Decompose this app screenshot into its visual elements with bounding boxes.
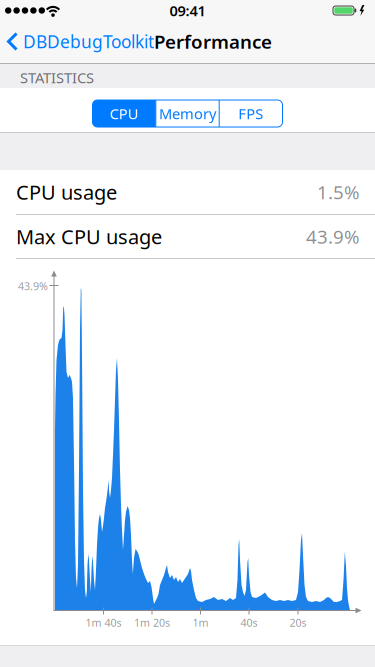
staticText: 20s — [289, 615, 306, 630]
staticText: 1m 40s — [85, 615, 121, 630]
staticText: Performance — [154, 29, 272, 54]
staticText: 40s — [240, 615, 257, 630]
button[interactable]: FPS — [219, 100, 282, 127]
staticText: STATISTICS — [20, 68, 94, 87]
staticText: DBDebugToolkit — [23, 30, 154, 53]
button[interactable]: Memory — [156, 100, 219, 127]
staticText: CPU usage — [16, 179, 117, 205]
staticText: CPU — [110, 104, 139, 123]
button[interactable]: CPU — [92, 100, 156, 127]
staticText: 1.5% — [317, 180, 360, 204]
button[interactable]: Back — [7, 30, 154, 53]
staticText: 1m — [192, 615, 208, 630]
staticText: Memory — [159, 104, 216, 123]
staticText: 43.9% — [306, 224, 360, 249]
staticText: Max CPU usage — [16, 223, 162, 250]
staticText: 43.9% — [18, 279, 48, 293]
staticText: 09:41 — [169, 1, 205, 20]
staticText: 1m 20s — [134, 615, 170, 630]
staticText: FPS — [238, 104, 263, 123]
